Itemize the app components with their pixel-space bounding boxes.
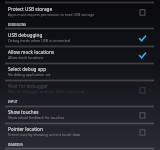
button[interactable]: Unchecked <box>136 82 154 98</box>
staticText: DRAWING <box>8 143 23 147</box>
button[interactable]: Unchecked <box>136 107 154 123</box>
button[interactable]: Unchecked <box>136 4 154 20</box>
staticText: Allow mock locations <box>8 49 55 55</box>
staticText: Pointer location <box>8 126 43 132</box>
staticText: Debug mode when USB is connected <box>8 38 71 43</box>
button[interactable]: Pointer location <box>0 122 160 138</box>
staticText: Apps must request permission to read USB… <box>8 12 95 17</box>
staticText: Screen overlay showing current touch dat… <box>8 132 81 137</box>
button[interactable]: USB debugging <box>0 28 160 44</box>
button[interactable]: Protect USB storage <box>0 2 160 18</box>
button[interactable]: Show touches <box>0 105 160 121</box>
button[interactable]: Checked <box>136 30 154 46</box>
button[interactable]: Checked <box>136 47 154 63</box>
button[interactable]: Allow mock locations <box>0 45 160 61</box>
staticText: Wait for debugger to attach before execu… <box>8 89 85 94</box>
staticText: DEBUGGING <box>8 23 27 27</box>
button[interactable]: Unchecked <box>136 124 154 140</box>
button[interactable]: Wait for debugger <box>0 79 160 95</box>
staticText: USB debugging <box>8 32 43 38</box>
staticText: No debug application set <box>8 72 51 77</box>
staticText: INPUT <box>8 100 18 104</box>
button[interactable]: Select debug app <box>0 62 160 78</box>
staticText: Allow mock locations <box>8 55 44 60</box>
staticText: Protect USB storage <box>8 6 53 12</box>
staticText: Wait for debugger <box>8 83 49 89</box>
staticText: Show touches <box>8 109 39 115</box>
staticText: Select debug app <box>8 66 47 72</box>
staticText: Show visual feedback for touches <box>8 115 65 120</box>
